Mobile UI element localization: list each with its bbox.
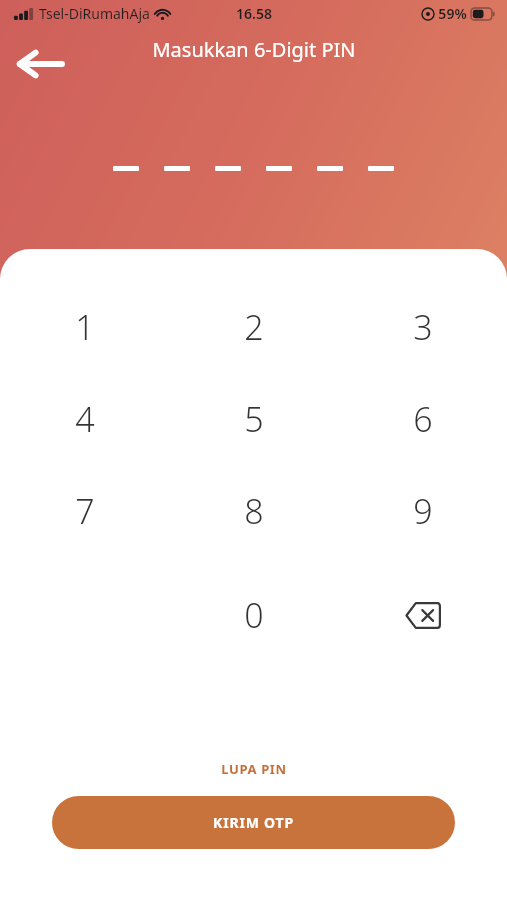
staticText: 4 (75, 396, 95, 442)
staticText: KIRIM OTP (213, 813, 294, 832)
staticText: 3 (413, 304, 433, 350)
staticText: Tsel-DiRumahAja (39, 4, 150, 23)
staticText: 6 (413, 396, 433, 442)
button[interactable]: 3 (338, 297, 507, 357)
staticText: Masukkan 6-Digit PIN (152, 36, 356, 63)
staticText: 7 (75, 488, 95, 534)
button[interactable]: 0 (169, 585, 338, 645)
button[interactable]: KIRIM OTP (52, 796, 455, 849)
staticText: 1 (75, 304, 95, 350)
button[interactable]: Back (14, 38, 66, 90)
staticText: 9 (413, 488, 433, 534)
button[interactable]: 1 (0, 297, 169, 357)
button[interactable]: 5 (169, 389, 338, 449)
button[interactable]: 4 (0, 389, 169, 449)
staticText: 59% (438, 4, 467, 23)
button[interactable]: Backspace (338, 585, 507, 645)
staticText: LUPA PIN (221, 760, 287, 778)
button[interactable]: 6 (338, 389, 507, 449)
button[interactable]: 8 (169, 481, 338, 541)
button[interactable]: 7 (0, 481, 169, 541)
staticText: 16.58 (236, 4, 272, 23)
staticText: 0 (244, 592, 264, 638)
staticText: 8 (244, 488, 264, 534)
button[interactable]: 9 (338, 481, 507, 541)
button[interactable]: LUPA PIN (203, 754, 305, 784)
button[interactable]: 2 (169, 297, 338, 357)
staticText: 5 (244, 396, 264, 442)
staticText: 2 (244, 304, 264, 350)
